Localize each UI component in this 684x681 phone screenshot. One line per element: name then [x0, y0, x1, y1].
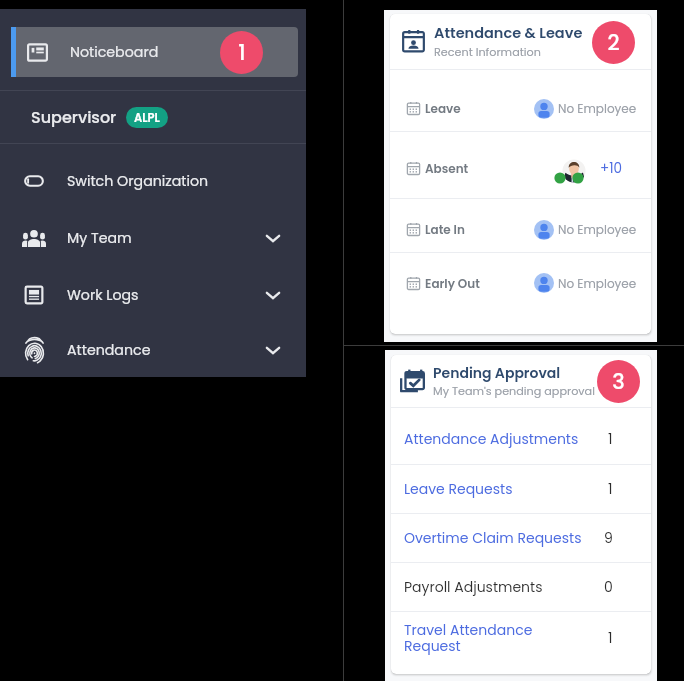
staticText: My Team	[67, 228, 132, 248]
button[interactable]: Noticeboard	[11, 27, 298, 77]
staticText: +10	[600, 159, 623, 178]
button[interactable]: Supervisor	[0, 91, 306, 143]
staticText: Leave Requests	[404, 479, 513, 499]
staticText: ALPL	[134, 110, 160, 126]
staticText: Attendance & Leave	[434, 23, 583, 43]
staticText: Supervisor	[31, 106, 117, 128]
staticText: Late In	[425, 221, 465, 238]
staticText: 0	[604, 577, 613, 597]
button[interactable]: Leave	[390, 70, 651, 131]
staticText: Attendance Adjustments	[404, 429, 579, 449]
button[interactable]: Switch Organization	[0, 152, 306, 209]
staticText: 1	[238, 38, 246, 67]
staticText: Travel Attendance Request	[404, 620, 533, 656]
button[interactable]: Payroll Adjustments	[391, 563, 651, 611]
button[interactable]: Early Out	[390, 253, 651, 313]
button[interactable]: Work Logs	[0, 266, 306, 323]
button[interactable]: Attendance	[0, 323, 306, 377]
staticText: Absent	[425, 160, 469, 177]
staticText: 3	[612, 367, 625, 396]
staticText: Attendance	[67, 340, 151, 360]
other: My Team	[22, 229, 46, 247]
button[interactable]: Attendance Adjustments	[391, 408, 651, 464]
button[interactable]: Late In	[390, 199, 651, 252]
staticText: Noticeboard	[70, 42, 159, 62]
button[interactable]: Leave Requests	[391, 465, 651, 513]
staticText: Payroll Adjustments	[404, 577, 543, 597]
other: Switch Organization	[23, 174, 45, 188]
button[interactable]: Absent	[390, 132, 651, 198]
staticText: Leave	[425, 100, 461, 117]
staticText: Switch Organization	[67, 171, 209, 191]
staticText: Overtime Claim Requests	[404, 528, 582, 548]
button[interactable]: Travel Attendance Request	[391, 612, 651, 674]
staticText: Recent Information	[434, 44, 541, 60]
staticText: No Employee	[558, 100, 637, 117]
staticText: 9	[604, 528, 613, 548]
other: Work Logs	[23, 284, 45, 306]
staticText: 1	[608, 429, 613, 449]
staticText: 1	[608, 628, 613, 648]
staticText: 2	[607, 28, 620, 57]
button[interactable]: Overtime Claim Requests	[391, 514, 651, 562]
button[interactable]: My Team	[0, 209, 306, 266]
staticText: My Team's pending approval	[433, 383, 595, 399]
staticText: No Employee	[558, 221, 637, 238]
staticText: Pending Approval	[433, 363, 561, 383]
staticText: 1	[608, 479, 613, 499]
other: Attendance	[25, 339, 44, 362]
staticText: Work Logs	[67, 285, 139, 305]
staticText: No Employee	[558, 275, 637, 292]
staticText: Early Out	[425, 275, 480, 292]
